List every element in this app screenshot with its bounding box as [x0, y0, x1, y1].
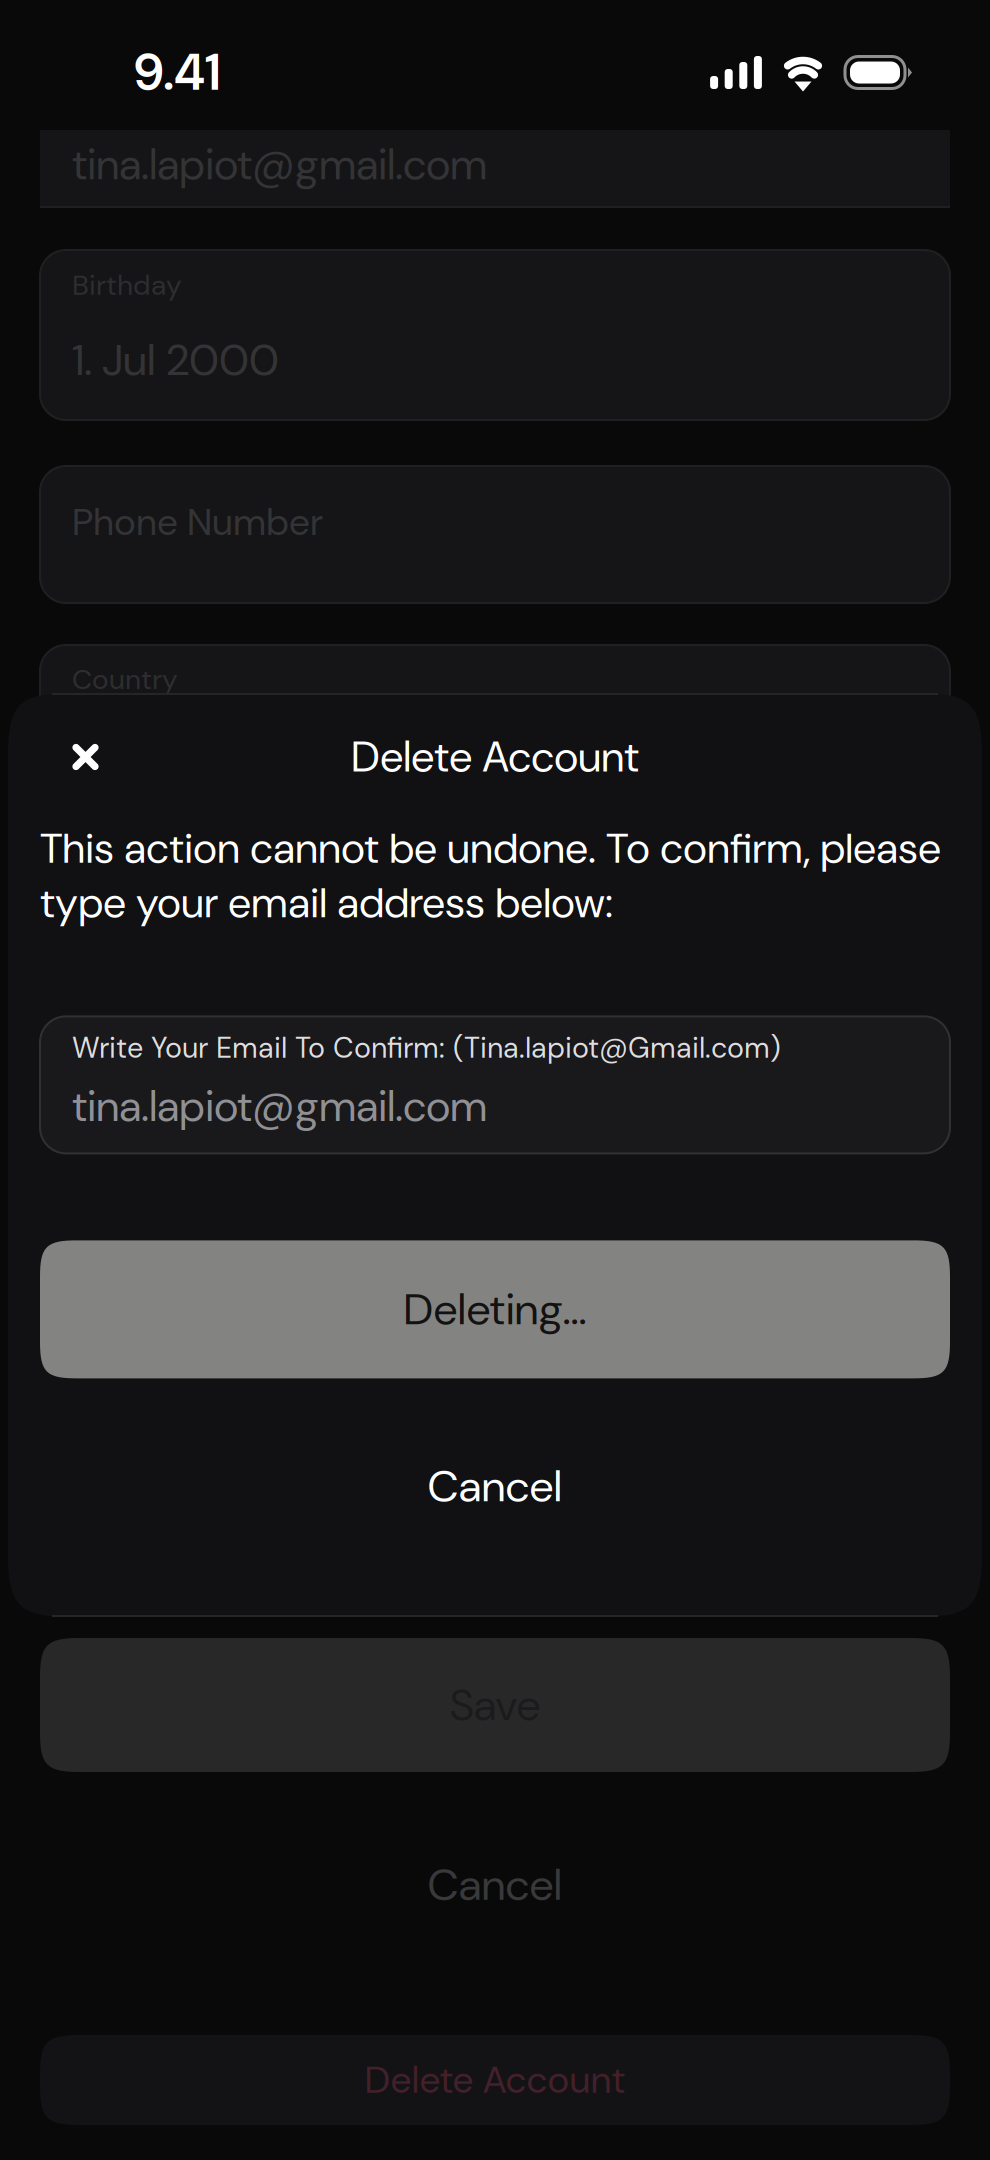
- staticText: Write Your Email To Confirm: (Tina.lapio…: [72, 1029, 781, 1067]
- staticText: tina.lapiot@gmail.com: [72, 1079, 487, 1134]
- staticText: Delete Account: [364, 2056, 625, 2104]
- staticText: Deleting...: [403, 1281, 586, 1338]
- staticText: Save: [449, 1676, 540, 1734]
- staticText: tina.lapiot@gmail.com: [72, 137, 487, 193]
- button[interactable]: Cancel: [8, 1438, 982, 1534]
- staticText: Phone Number: [72, 498, 323, 547]
- staticText: Cancel: [427, 1856, 562, 1913]
- staticText: 9.41: [134, 39, 220, 105]
- staticText: Country: [72, 661, 178, 698]
- button[interactable]: Deleting...: [8, 1240, 982, 1378]
- button[interactable]: Close: [40, 725, 144, 789]
- staticText: 1. Jul 2000: [72, 331, 279, 389]
- staticText: Cancel: [427, 1458, 562, 1515]
- staticText: This action cannot be undone. To confirm…: [40, 821, 941, 930]
- staticText: Birthday: [72, 267, 182, 303]
- staticText: Delete Account: [351, 729, 639, 785]
